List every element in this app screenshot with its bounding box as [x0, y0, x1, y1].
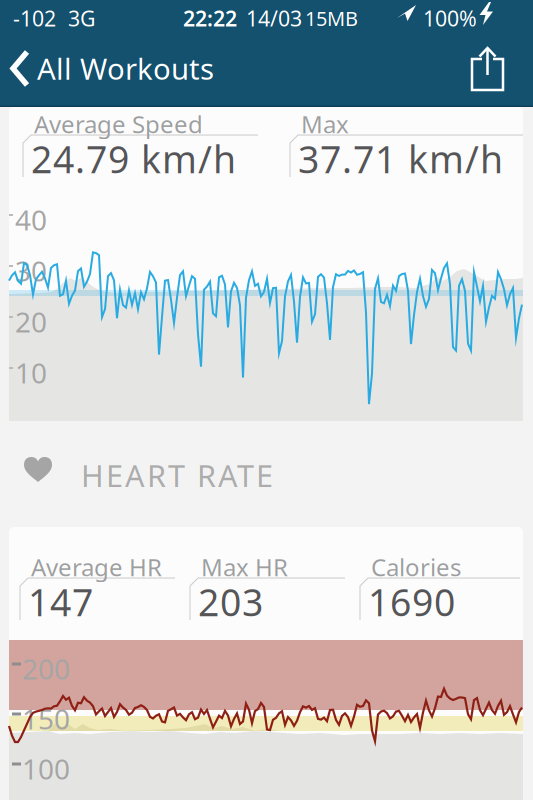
- staticText: Max: [301, 108, 349, 140]
- staticText: 24.79 km/h: [31, 134, 236, 184]
- staticText: 37.71 km/h: [298, 134, 503, 184]
- staticText: 14/03: [246, 4, 302, 32]
- button[interactable]: Share: [470, 46, 506, 92]
- staticText: 203: [198, 577, 263, 627]
- staticText: 22:22: [183, 4, 237, 32]
- staticText: 3G: [68, 4, 96, 32]
- staticText: -102: [13, 4, 56, 32]
- staticText: 40: [15, 201, 47, 238]
- staticText: 15MB: [305, 5, 358, 32]
- staticText: Average Speed: [34, 108, 203, 140]
- button[interactable]: All Workouts: [10, 49, 214, 88]
- staticText: HEART RATE: [81, 455, 273, 496]
- staticText: 20: [15, 303, 47, 340]
- staticText: 150: [22, 700, 70, 737]
- staticText: Max HR: [201, 551, 288, 583]
- staticText: Average HR: [31, 551, 162, 583]
- staticText: 30: [15, 252, 47, 289]
- staticText: 10: [15, 354, 47, 391]
- staticText: 100%: [423, 4, 477, 32]
- staticText: 100: [22, 750, 70, 787]
- staticText: 1690: [368, 577, 455, 627]
- staticText: 200: [22, 650, 70, 687]
- staticText: Calories: [371, 551, 461, 583]
- staticText: 147: [28, 577, 93, 627]
- staticText: All Workouts: [37, 49, 214, 88]
